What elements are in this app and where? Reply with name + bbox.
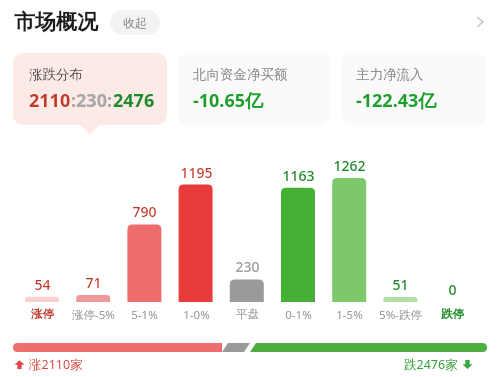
staticText: -122.43亿 [356, 88, 437, 113]
staticText: 0-1% [285, 307, 312, 323]
button[interactable]: 涨跌分布 [13, 53, 167, 125]
staticText: 5%-跌停 [379, 307, 422, 323]
staticText: :230: [71, 88, 113, 113]
button[interactable]: 跌2476家 [404, 356, 473, 373]
button[interactable]: 收起 [110, 10, 160, 35]
staticText: 51 [392, 275, 409, 294]
staticText: 1195 [180, 163, 213, 182]
staticText: 54 [34, 275, 51, 294]
staticText: 主力净流入 [356, 66, 424, 83]
button[interactable]: 涨2110家 [14, 356, 83, 373]
staticText: 涨跌分布 [29, 66, 83, 83]
staticText: 平盘 [236, 307, 259, 321]
staticText: 1262 [333, 156, 366, 175]
staticText: 2476 [113, 88, 155, 113]
button[interactable]: 5%-跌停 [370, 307, 430, 323]
button[interactable]: 平盘 [217, 307, 277, 321]
button[interactable]: 跌停 [422, 307, 482, 321]
button[interactable]: 涨停 [12, 307, 72, 321]
button[interactable]: 1-0% [166, 307, 226, 323]
staticText: 涨停-5% [72, 307, 115, 323]
staticText: 5-1% [131, 307, 158, 323]
button[interactable]: 0-1% [268, 307, 328, 323]
staticText: 跌停 [441, 307, 464, 321]
staticText: 1-5% [336, 307, 363, 323]
button[interactable]: 1-5% [319, 307, 379, 323]
staticText: 2110 [29, 88, 71, 113]
staticText: 1-0% [183, 307, 210, 323]
staticText: 790 [132, 202, 157, 221]
button[interactable]: 涨停-5% [63, 307, 123, 323]
staticText: 收起 [123, 15, 147, 30]
staticText: 71 [85, 273, 102, 292]
staticText: 230 [235, 257, 260, 276]
button[interactable]: 5-1% [114, 307, 174, 323]
staticText: 涨2110家 [29, 356, 83, 373]
staticText: -10.65亿 [193, 88, 264, 113]
staticText: 北向资金净买额 [193, 66, 288, 83]
button[interactable]: 更多 [460, 2, 500, 42]
staticText: 市场概况 [14, 9, 98, 35]
staticText: 涨停 [31, 307, 54, 321]
staticText: 1163 [282, 166, 315, 185]
button[interactable]: 北向资金净买额 [178, 53, 330, 125]
button[interactable]: 主力净流入 [341, 53, 487, 125]
staticText: 跌2476家 [404, 356, 458, 373]
staticText: 0 [448, 280, 457, 299]
